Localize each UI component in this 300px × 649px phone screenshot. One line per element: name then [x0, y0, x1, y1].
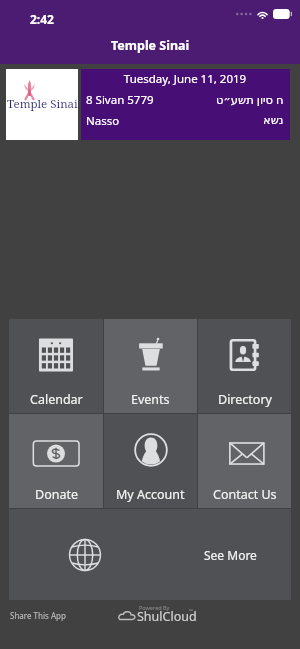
button[interactable]: Events — [104, 319, 197, 413]
button[interactable]: My Account — [104, 414, 197, 508]
staticText: Contact Us — [213, 486, 277, 503]
staticText: Directory — [218, 391, 272, 408]
button[interactable]: Calendar — [9, 319, 103, 413]
staticText: Temple Sinai — [7, 96, 79, 112]
staticText: See More — [204, 547, 257, 563]
staticText: Donate — [35, 486, 78, 503]
button[interactable]: Directory — [198, 319, 291, 413]
staticText: 8 Sivan 5779 — [86, 92, 154, 108]
staticText: Tuesday, June 11, 2019 — [86, 71, 284, 87]
other: See more — [68, 538, 102, 572]
button[interactable]: Temple Sinai — [6, 69, 78, 140]
button[interactable]: Share This App — [10, 610, 66, 621]
staticText: Nasso — [86, 113, 120, 129]
staticText: 2:42 — [30, 11, 54, 27]
button[interactable]: Donate — [9, 414, 103, 508]
button[interactable]: See more — [9, 509, 291, 600]
staticText: My Account — [116, 486, 185, 503]
staticText: Temple Sinai — [111, 37, 190, 54]
button[interactable]: Powered By — [118, 604, 178, 621]
staticText: ShulCloud — [137, 608, 197, 625]
staticText: Powered By — [139, 604, 170, 611]
staticText: Calendar — [30, 391, 83, 408]
staticText: ח סיון תשע״ט — [216, 92, 284, 108]
staticText: Events — [131, 391, 170, 408]
staticText: נשא — [263, 113, 284, 126]
staticText: ™ — [189, 608, 193, 615]
button[interactable]: Tuesday, June 11, 2019 — [81, 69, 290, 140]
button[interactable]: Contact Us — [198, 414, 291, 508]
button[interactable]: Temple Sinai — [0, 28, 300, 64]
